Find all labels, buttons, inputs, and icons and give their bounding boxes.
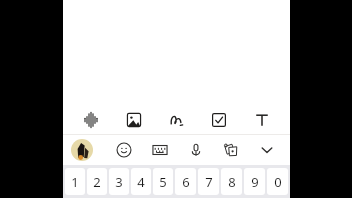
button[interactable]: Ink drawing [162,107,192,133]
button[interactable]: Audio message [76,107,106,133]
button[interactable]: Insert picture [119,107,149,133]
button[interactable]: 3 [109,168,129,195]
button[interactable]: 0 [267,168,288,195]
staticText: 3 [115,173,123,191]
staticText: 6 [182,173,190,191]
button[interactable]: 7 [198,168,219,195]
button[interactable]: 8 [221,168,242,195]
button[interactable]: 9 [244,168,265,195]
button[interactable]: Task checklist [204,107,234,133]
button[interactable]: 5 [153,168,173,195]
button[interactable]: Stickers [216,137,246,163]
staticText: 4 [137,173,145,191]
button[interactable]: 2 [87,168,107,195]
button[interactable]: Voice input [181,137,211,163]
staticText: 9 [251,173,259,191]
staticText: 2 [93,173,101,191]
button[interactable]: 4 [131,168,151,195]
staticText: 1 [71,173,79,191]
button[interactable]: Show more [252,137,282,163]
button[interactable]: Text formatting [247,107,277,133]
staticText: 0 [274,173,282,191]
button[interactable]: Emoji [109,137,139,163]
button[interactable]: 1 [65,168,85,195]
staticText: 8 [228,173,236,191]
button[interactable]: Keyboard [145,137,175,163]
button[interactable]: Profile [67,135,97,165]
button[interactable]: 6 [175,168,196,195]
staticText: 7 [205,173,213,191]
staticText: 5 [159,173,167,191]
